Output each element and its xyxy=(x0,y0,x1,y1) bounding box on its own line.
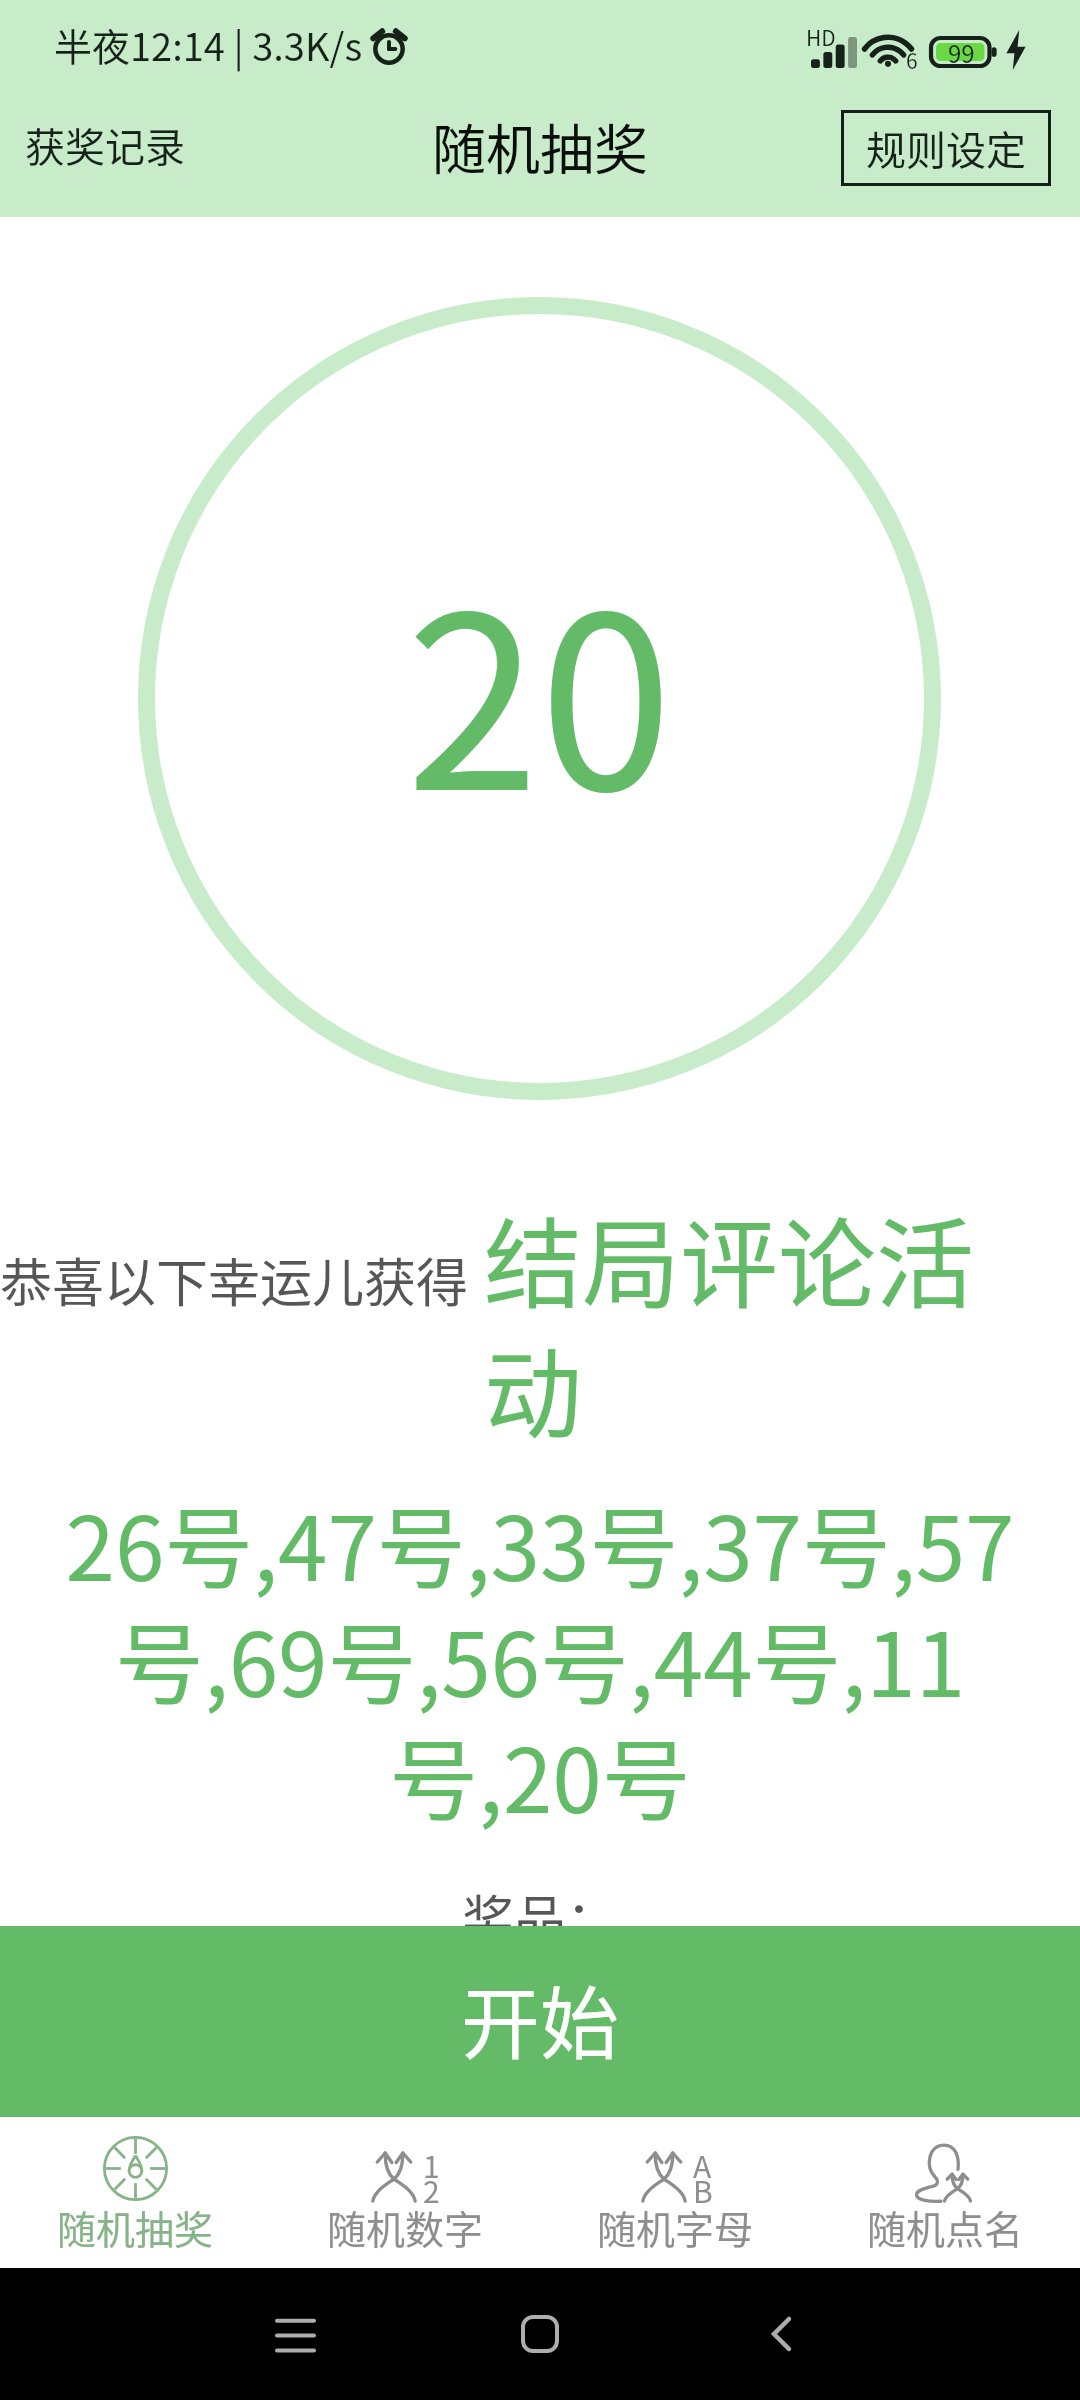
staticText: 恭喜以下幸运儿获得 xyxy=(0,1242,469,1317)
staticText: 1 xyxy=(423,2143,440,2186)
button[interactable]: A xyxy=(540,2117,810,2268)
other: Recent apps xyxy=(272,2309,322,2359)
button[interactable]: 随机点名 xyxy=(810,2117,1080,2268)
staticText: 2 xyxy=(423,2168,440,2211)
staticText: 随机抽奖 xyxy=(432,107,648,185)
staticText: HD xyxy=(806,22,836,52)
staticText: 结局评论活 动 xyxy=(484,1196,975,1456)
staticText: 20 xyxy=(406,512,673,860)
staticText: 随机数字 xyxy=(327,2199,484,2255)
staticText: 半夜12:14 | 3.3K/s xyxy=(54,17,363,72)
button[interactable]: 随机抽奖 xyxy=(0,2117,270,2268)
other: Back xyxy=(758,2309,808,2359)
staticText: A xyxy=(693,2143,712,2186)
staticText: 随机抽奖 xyxy=(57,2199,214,2255)
staticText: 开始 xyxy=(461,1961,619,2075)
button[interactable]: 获奖记录 xyxy=(0,106,195,184)
button[interactable]: 开始 xyxy=(0,1926,1080,2117)
staticText: 奖品： xyxy=(0,1879,1080,1954)
staticText: 99 xyxy=(948,35,975,63)
button[interactable]: 1 xyxy=(270,2117,540,2268)
staticText: 26号,47号,33号,37号,57 号,69号,56号,44号,11 号,20… xyxy=(0,1488,1080,1836)
staticText: 6 xyxy=(906,45,918,75)
staticText: 规则设定 xyxy=(866,119,1026,177)
other: Home xyxy=(515,2309,565,2359)
staticText: 随机字母 xyxy=(597,2199,754,2255)
button[interactable]: 规则设定 xyxy=(841,110,1051,186)
staticText: B xyxy=(693,2168,713,2211)
staticText: 随机点名 xyxy=(867,2199,1024,2255)
